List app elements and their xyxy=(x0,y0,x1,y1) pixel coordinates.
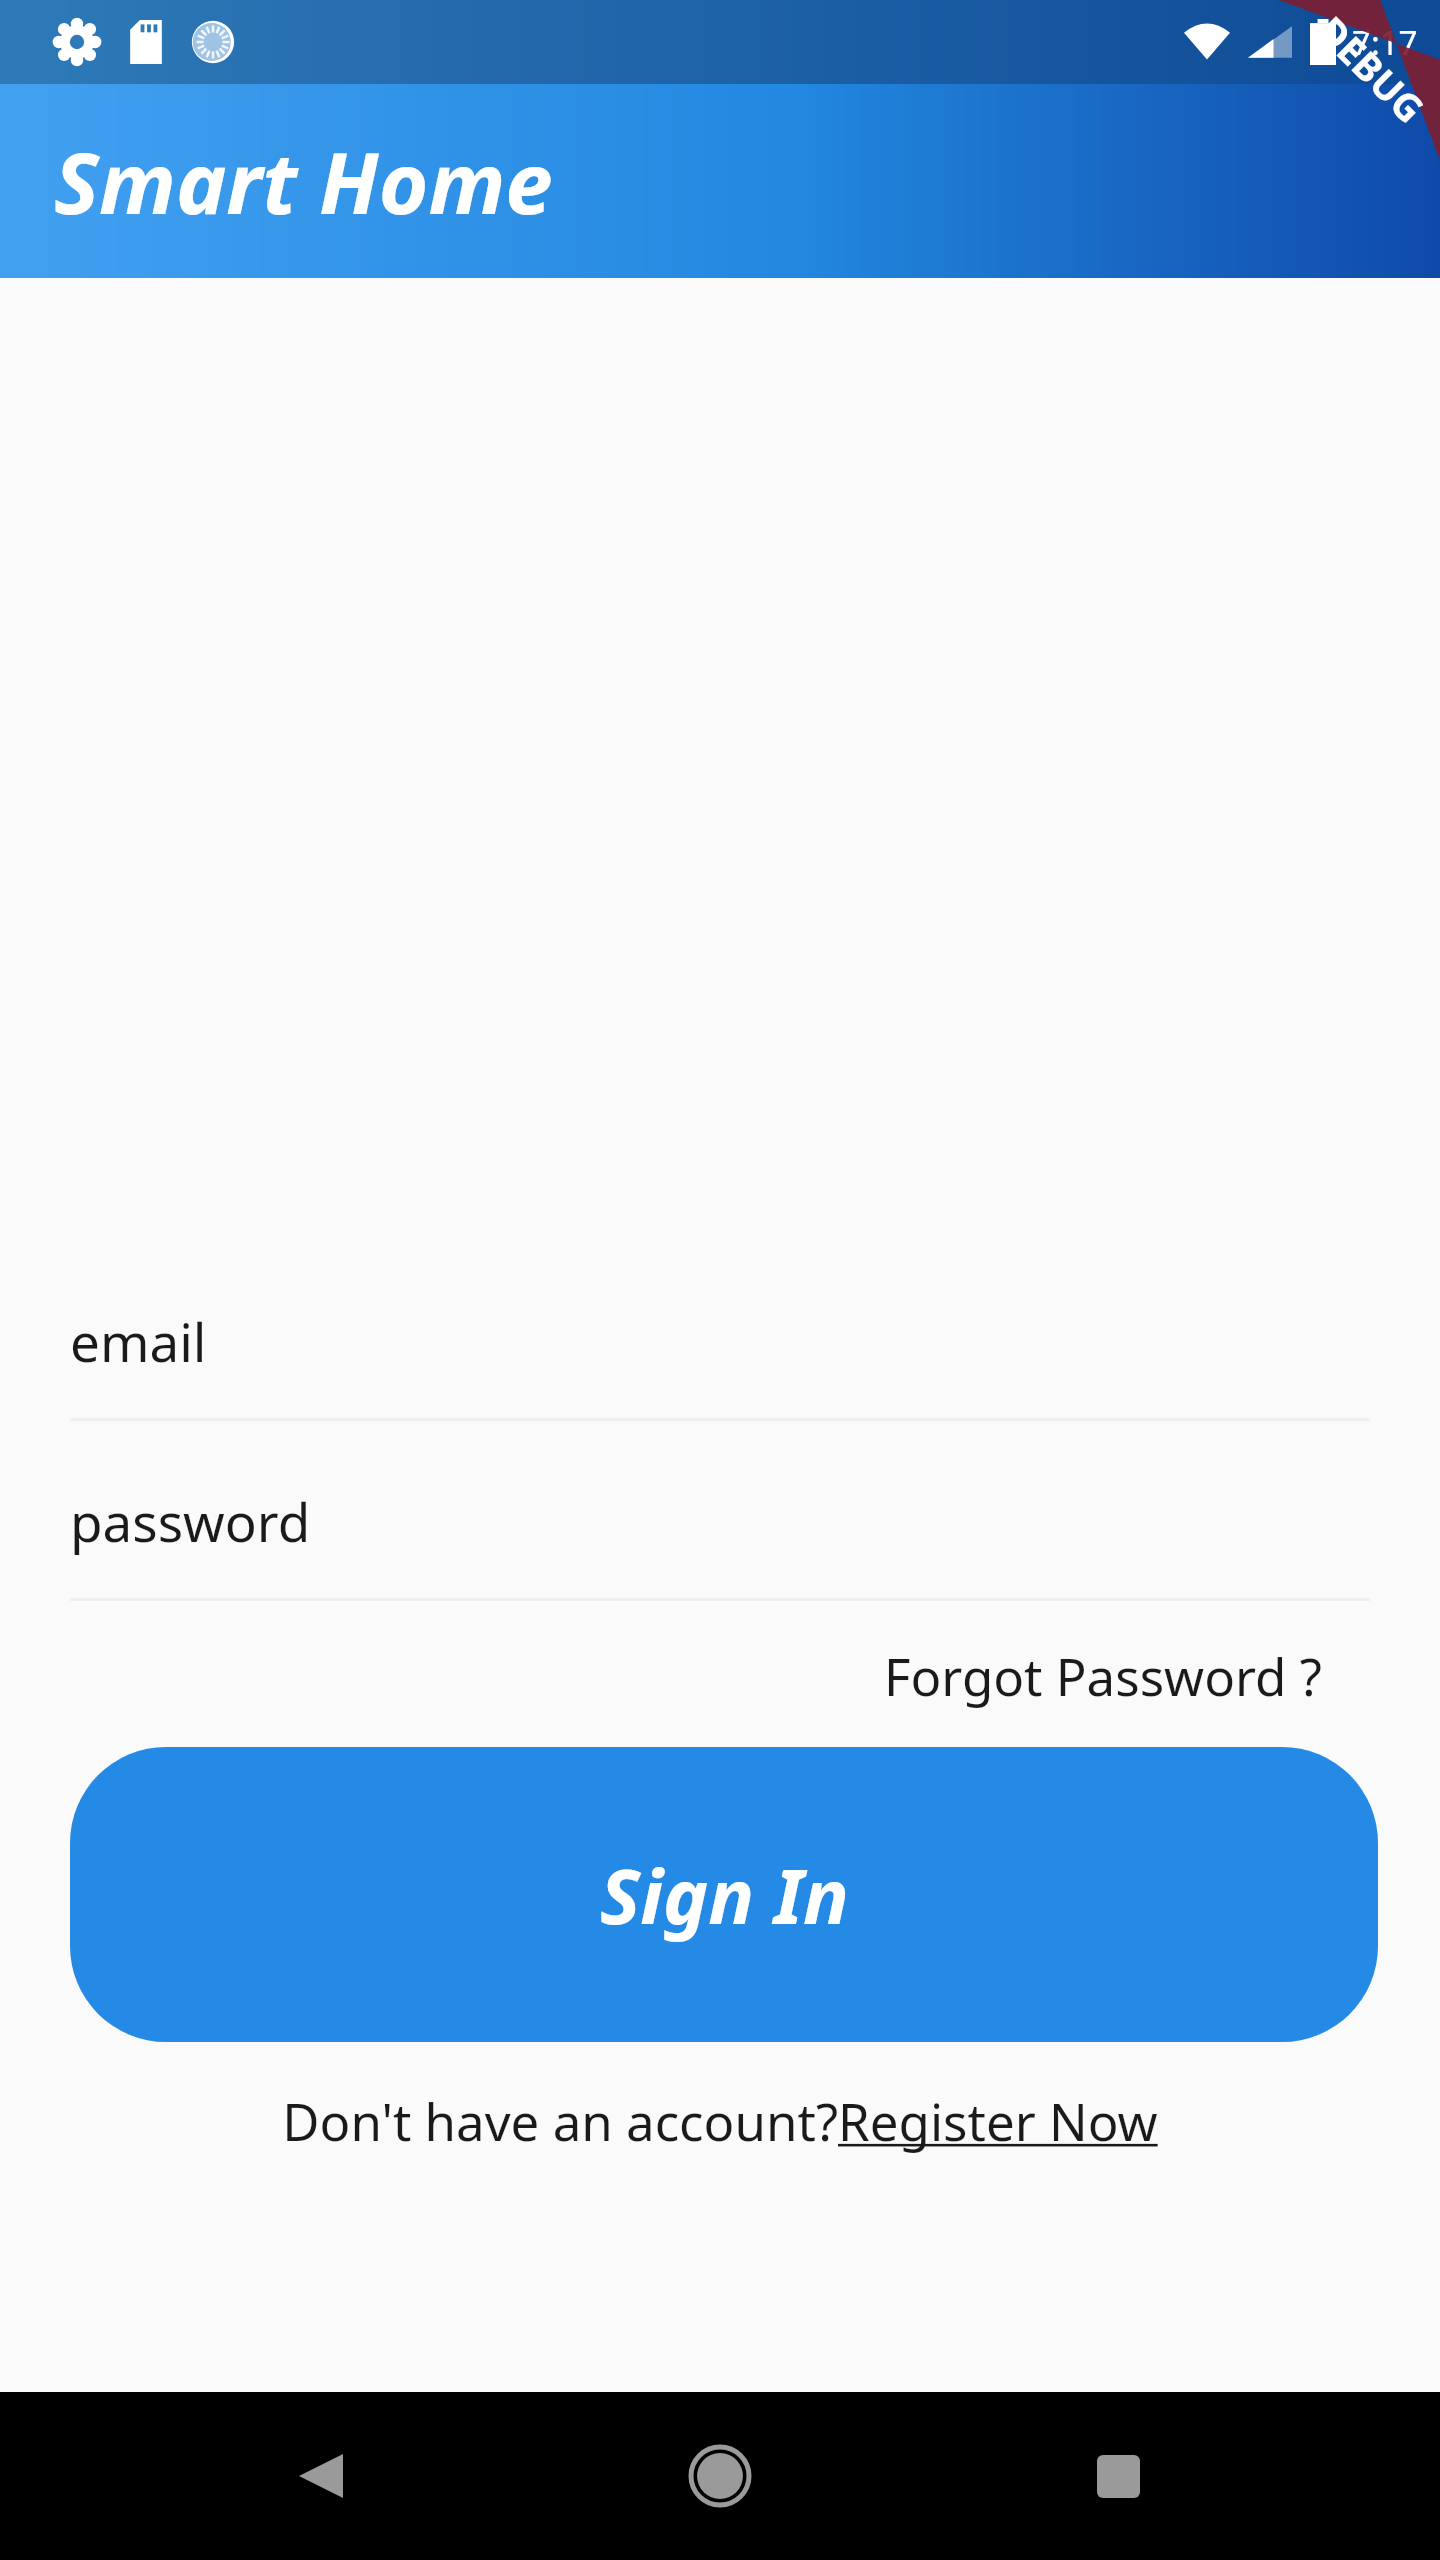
staticText: email xyxy=(70,1305,207,1377)
staticText: Sign In xyxy=(600,1843,849,1947)
button[interactable]: password xyxy=(0,1485,1440,1601)
button[interactable]: email xyxy=(0,1305,1440,1421)
button[interactable]: Don't have an account?Register Now xyxy=(274,2078,1166,2163)
staticText: password xyxy=(70,1485,311,1557)
staticText: DEBUG xyxy=(1307,4,1436,134)
button[interactable]: Recent apps xyxy=(1058,2416,1178,2536)
staticText: Smart Home xyxy=(54,123,553,239)
button[interactable]: Forgot Password ? xyxy=(884,1633,1440,1718)
staticText: Forgot Password ? xyxy=(884,1641,1322,1710)
staticText: 7:17 xyxy=(1352,20,1418,65)
button[interactable]: Home xyxy=(660,2416,780,2536)
button[interactable]: Back xyxy=(261,2416,381,2536)
button[interactable]: Sign In xyxy=(70,1747,1378,2042)
staticText: Don't have an account?Register Now xyxy=(282,2086,1158,2155)
